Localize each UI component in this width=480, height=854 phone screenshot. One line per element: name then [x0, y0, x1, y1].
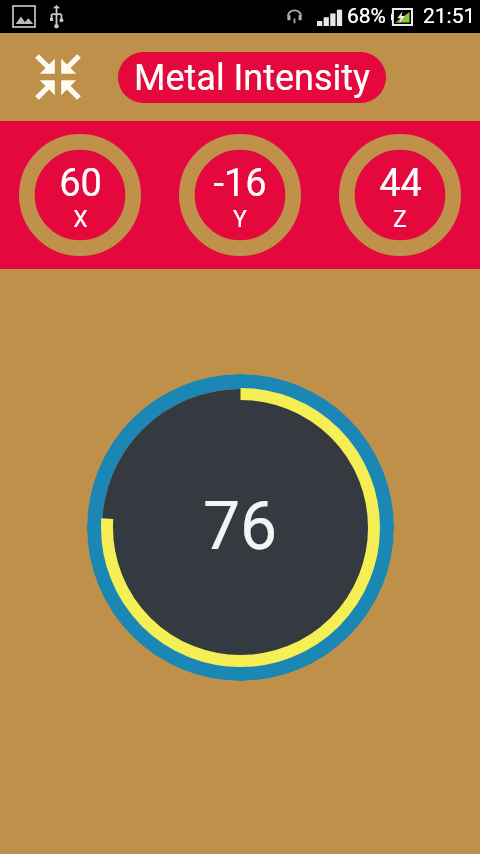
button[interactable]: 44	[320, 121, 480, 269]
staticText: 60	[59, 161, 102, 206]
button[interactable]: Metal intensity 76	[87, 374, 394, 681]
staticText: -16	[213, 161, 267, 206]
staticText: Y	[233, 206, 247, 233]
button[interactable]: 60	[0, 121, 160, 269]
button[interactable]: -16	[160, 121, 320, 269]
staticText: X	[73, 206, 88, 233]
button[interactable]: Collapse	[30, 49, 86, 105]
staticText: Z	[393, 206, 407, 233]
staticText: Metal Intensity	[134, 57, 371, 99]
staticText: 76	[203, 488, 278, 565]
staticText: 44	[379, 161, 422, 206]
staticText: 21:51	[423, 4, 476, 29]
button[interactable]: Metal Intensity	[118, 52, 386, 103]
staticText: 68%	[347, 4, 386, 29]
